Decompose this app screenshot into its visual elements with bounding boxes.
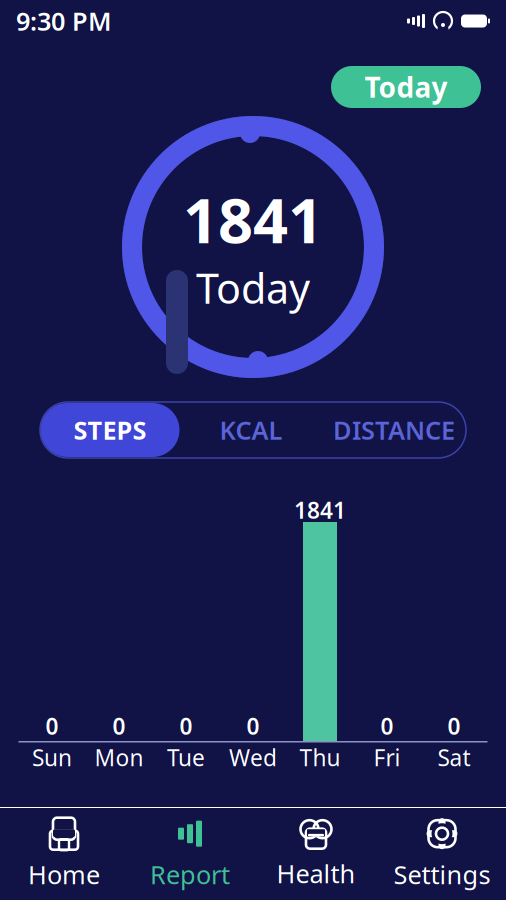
staticText: Health [276, 857, 355, 890]
staticText: Wed [229, 742, 277, 772]
button[interactable]: Home [1, 810, 127, 898]
staticText: DISTANCE [333, 413, 455, 447]
staticText: Home [28, 858, 100, 891]
staticText: Thu [299, 742, 340, 772]
staticText: 0 [112, 711, 125, 741]
staticText: KCAL [219, 413, 282, 447]
button[interactable]: DISTANCE [322, 403, 465, 457]
button[interactable]: Report [127, 810, 253, 898]
button[interactable]: Health [253, 810, 379, 898]
staticText: 0 [45, 711, 58, 741]
staticText: 9:30 PM [16, 4, 112, 38]
staticText: Today [364, 68, 447, 106]
staticText: 1841 [183, 179, 323, 260]
staticText: Sat [437, 742, 470, 772]
staticText: 0 [246, 711, 259, 741]
button[interactable]: STEPS [40, 403, 179, 457]
staticText: 1841 [294, 495, 346, 525]
button[interactable]: Today [331, 66, 481, 108]
staticText: 0 [380, 711, 393, 741]
staticText: 0 [179, 711, 192, 741]
staticText: Sun [32, 742, 72, 772]
staticText: Tue [167, 742, 205, 772]
staticText: Fri [373, 742, 400, 772]
staticText: Mon [94, 742, 143, 772]
staticText: 0 [447, 711, 460, 741]
staticText: Report [150, 858, 230, 891]
staticText: Today [196, 260, 310, 315]
staticText: STEPS [73, 413, 146, 447]
staticText: Settings [393, 858, 490, 891]
button[interactable]: Settings [379, 810, 505, 898]
button[interactable]: KCAL [179, 403, 322, 457]
